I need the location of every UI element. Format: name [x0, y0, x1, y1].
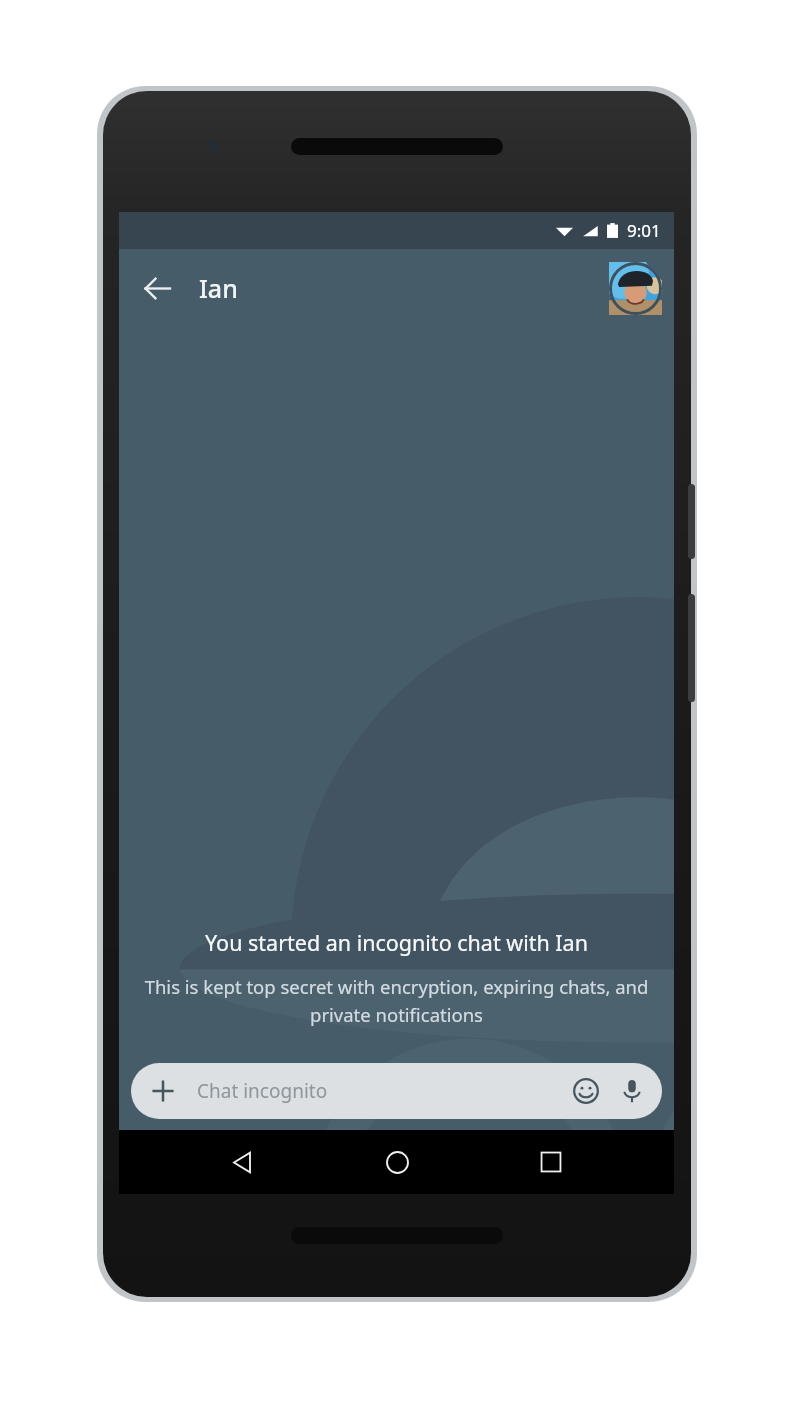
staticText: You started an incognito chat with Ian: [205, 928, 588, 957]
staticText: Chat incognito: [197, 1078, 328, 1104]
button[interactable]: Emoji: [564, 1069, 608, 1113]
button[interactable]: Back: [210, 1130, 274, 1194]
button[interactable]: Recent apps: [519, 1130, 583, 1194]
staticText: Ian: [199, 271, 238, 305]
button[interactable]: Ian: [199, 271, 238, 305]
button[interactable]: Contact profile: [609, 262, 662, 315]
staticText: This is kept top secret with encryption,…: [141, 974, 652, 1027]
button[interactable]: Home: [365, 1130, 429, 1194]
staticText: 9:01: [627, 219, 661, 242]
button[interactable]: Add attachment: [143, 1071, 183, 1111]
button[interactable]: Add attachment: [131, 1063, 662, 1119]
button[interactable]: Back: [129, 260, 185, 316]
button[interactable]: Voice message: [610, 1069, 654, 1113]
